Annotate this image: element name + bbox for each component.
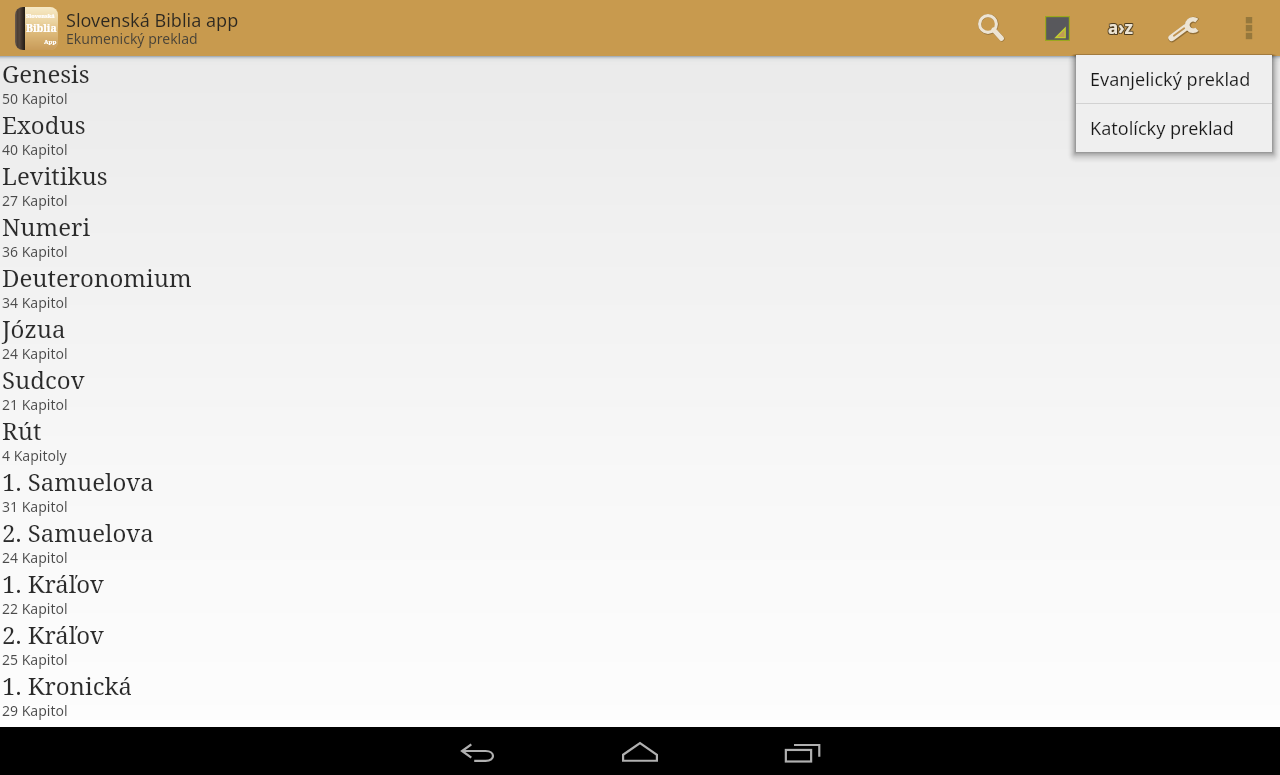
staticText: App <box>44 38 57 46</box>
staticText: 1. Samuelova <box>2 465 154 498</box>
staticText: 1. Kráľov <box>2 567 104 600</box>
button[interactable]: Levitikus <box>0 158 1280 209</box>
button[interactable]: Sudcov <box>0 362 1280 413</box>
staticText: a›z <box>1107 15 1132 38</box>
staticText: Biblia <box>26 21 57 35</box>
button[interactable]: 2. Samuelova <box>0 515 1280 566</box>
button[interactable]: Search <box>963 0 1019 56</box>
staticText: Ekumenický preklad <box>66 29 198 48</box>
button[interactable]: Back <box>442 727 514 775</box>
staticText: 24 Kapitol <box>2 344 68 363</box>
staticText: 21 Kapitol <box>2 395 68 414</box>
staticText: Levitikus <box>2 159 108 192</box>
staticText: 40 Kapitol <box>2 140 68 159</box>
button[interactable]: Home <box>604 727 676 775</box>
staticText: 31 Kapitol <box>2 497 68 516</box>
staticText: Rút <box>2 414 42 447</box>
button[interactable]: 1. Kronická <box>0 668 1280 719</box>
button[interactable]: Genesis <box>0 56 1280 107</box>
staticText: 2. Kronická <box>2 720 133 753</box>
staticText: a›z <box>1108 17 1133 40</box>
staticText: 27 Kapitol <box>2 191 68 210</box>
staticText: Józua <box>2 312 66 345</box>
staticText: 34 Kapitol <box>2 293 68 312</box>
button[interactable]: Toggle theme <box>1029 0 1085 56</box>
staticText: a›z <box>1108 15 1133 38</box>
button[interactable]: 2. Kronická <box>0 719 1280 770</box>
button[interactable]: Exodus <box>0 107 1280 158</box>
button[interactable]: Recent apps <box>766 727 838 775</box>
button[interactable]: Deuteronomium <box>0 260 1280 311</box>
staticText: 1. Kronická <box>2 669 133 702</box>
staticText: a›z <box>1109 17 1134 40</box>
staticText: a›z <box>1107 16 1132 39</box>
button[interactable]: Slovenská Biblia app <box>66 0 239 56</box>
staticText: 4 Kapitoly <box>2 446 67 465</box>
button[interactable]: Sort alphabetically <box>1092 0 1148 56</box>
button[interactable]: App icon <box>15 7 58 50</box>
button[interactable]: More options <box>1221 0 1277 56</box>
staticText: Slovenská <box>26 12 55 20</box>
staticText: Slovenská Biblia app <box>66 8 239 33</box>
button[interactable]: 1. Kráľov <box>0 566 1280 617</box>
staticText: Genesis <box>2 57 90 90</box>
button[interactable]: Settings <box>1156 0 1212 56</box>
staticText: Numeri <box>2 210 91 243</box>
staticText: Katolícky preklad <box>1090 116 1234 141</box>
staticText: 50 Kapitol <box>2 89 68 108</box>
staticText: 29 Kapitol <box>2 701 68 720</box>
staticText: a›z <box>1109 15 1134 38</box>
staticText: Sudcov <box>2 363 85 396</box>
staticText: 2. Samuelova <box>2 516 154 549</box>
staticText: Evanjelický preklad <box>1090 67 1251 92</box>
staticText: 24 Kapitol <box>2 548 68 567</box>
staticText: Deuteronomium <box>2 261 192 294</box>
staticText: 25 Kapitol <box>2 650 68 669</box>
button[interactable]: 2. Kráľov <box>0 617 1280 668</box>
staticText: 22 Kapitol <box>2 599 68 618</box>
staticText: 2. Kráľov <box>2 618 104 651</box>
button[interactable]: 1. Samuelova <box>0 464 1280 515</box>
staticText: 36 Kapitol <box>2 242 68 261</box>
staticText: a›z <box>1109 16 1134 39</box>
button[interactable]: Katolícky preklad <box>1076 104 1272 152</box>
button[interactable]: Rút <box>0 413 1280 464</box>
staticText: Exodus <box>2 108 86 141</box>
button[interactable]: Józua <box>0 311 1280 362</box>
staticText: a›z <box>1107 17 1132 40</box>
staticText: a›z <box>1108 16 1133 39</box>
button[interactable]: Numeri <box>0 209 1280 260</box>
button[interactable]: Evanjelický preklad <box>1076 55 1272 103</box>
